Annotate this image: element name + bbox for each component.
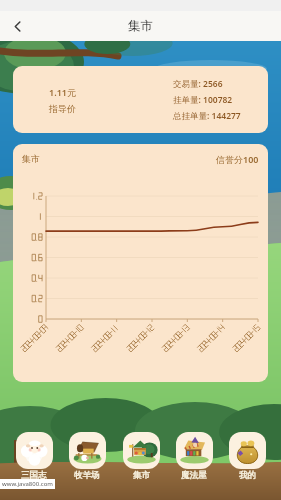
button[interactable]: Back [0, 11, 34, 41]
staticText: 信誉分100 [216, 153, 259, 165]
staticText: 集市 [22, 153, 40, 164]
staticText: 总挂单量: 144277 [173, 110, 241, 122]
staticText: 三国志 [21, 470, 47, 481]
staticText: 魔法屋 [181, 470, 207, 481]
staticText: 交易量: 2566 [173, 78, 223, 90]
button[interactable]: 集市 [118, 432, 164, 481]
staticText: 集市 [128, 18, 153, 34]
staticText: 牧羊场 [74, 470, 100, 481]
button[interactable]: 魔法屋 [171, 432, 217, 481]
staticText: 集市 [133, 470, 150, 481]
staticText: 挂单量: 100782 [173, 94, 233, 106]
button[interactable]: 1.11元 [13, 66, 268, 133]
button[interactable]: 牧羊场 [64, 432, 110, 481]
staticText: 指导价 [49, 103, 76, 114]
button[interactable]: 三国志 [11, 432, 57, 481]
button[interactable]: 我的 [224, 432, 270, 481]
staticText: 1.11元 [49, 86, 76, 98]
staticText: www.java800.com [2, 480, 53, 488]
staticText: 我的 [239, 470, 256, 481]
